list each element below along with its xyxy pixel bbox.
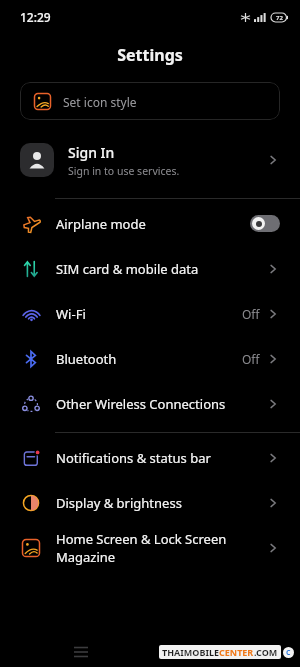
- button[interactable]: Display & brightness: [0, 480, 300, 525]
- staticText: Settings: [117, 44, 183, 66]
- staticText: THAIMOBILE: [162, 646, 219, 658]
- button[interactable]: Notifications & status bar: [0, 435, 300, 480]
- staticText: Other Wireless Connections: [56, 395, 260, 413]
- staticText: CENTER: [219, 646, 254, 658]
- button[interactable]: Airplane mode: [0, 201, 300, 246]
- staticText: 72: [276, 14, 283, 22]
- staticText: Wi-Fi: [56, 305, 236, 323]
- staticText: 12:29: [20, 9, 51, 25]
- staticText: C: [286, 648, 291, 658]
- button[interactable]: Recents: [68, 639, 94, 665]
- staticText: Off: [242, 351, 260, 367]
- staticText: Bluetooth: [56, 350, 236, 368]
- staticText: Sign in to use services.: [68, 164, 180, 178]
- button[interactable]: SIM card & mobile data: [0, 246, 300, 291]
- staticText: .COM: [254, 646, 278, 658]
- button[interactable]: Home Screen & Lock Screen Magazine: [0, 525, 300, 570]
- staticText: Home Screen & Lock Screen Magazine: [56, 530, 260, 566]
- button[interactable]: Airplane mode toggle: [250, 215, 280, 232]
- button[interactable]: Set icon style: [20, 82, 280, 120]
- staticText: Sign In: [68, 143, 115, 162]
- button[interactable]: Wi-Fi: [0, 291, 300, 336]
- staticText: Set icon style: [63, 94, 137, 110]
- staticText: Notifications & status bar: [56, 449, 260, 467]
- button[interactable]: Sign In: [0, 132, 300, 188]
- button[interactable]: Other Wireless Connections: [0, 381, 300, 426]
- staticText: Display & brightness: [56, 494, 260, 512]
- button[interactable]: Bluetooth: [0, 336, 300, 381]
- staticText: SIM card & mobile data: [56, 260, 260, 278]
- staticText: Airplane mode: [56, 215, 250, 233]
- staticText: Off: [242, 306, 260, 322]
